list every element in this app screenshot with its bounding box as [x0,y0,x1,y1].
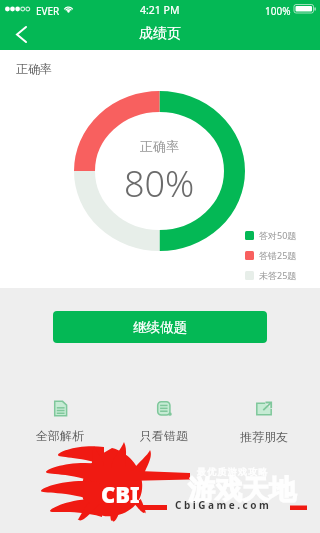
staticText: 正确率 [140,138,179,154]
staticText: CbiGame.com [175,498,272,512]
staticText: 答错25题 [259,249,297,261]
staticText: 最优质游戏攻略 [197,466,269,477]
button[interactable]: 全部解析 [24,395,96,448]
staticText: 正确率 [16,61,52,76]
staticText: 4:21 PM [140,3,180,17]
staticText: 只看错题 [140,428,188,443]
staticText: 继续做题 [133,319,187,336]
button[interactable]: 推荐朋友 [228,395,300,449]
staticText: 推荐朋友 [240,429,288,444]
staticText: 80% [124,159,195,208]
staticText: 100% [265,4,291,18]
staticText: 成绩页 [139,25,181,43]
staticText: EVER [36,4,60,18]
staticText: 未答25题 [259,269,297,281]
button[interactable]: Back [0,18,42,50]
staticText: CBI [101,479,140,509]
staticText: 答对50题 [259,229,297,241]
staticText: 游戏天地 [188,473,296,507]
button[interactable]: 继续做题 [53,311,267,343]
staticText: 全部解析 [36,428,84,443]
button[interactable]: 只看错题 [128,395,200,448]
